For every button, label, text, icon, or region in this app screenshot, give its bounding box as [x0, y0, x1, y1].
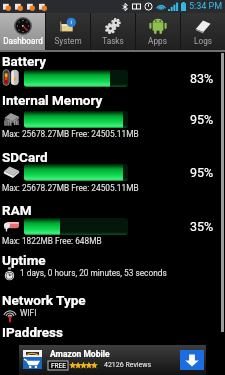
- staticText: Max: 25678.27MB Free: 24505.11MB: [2, 129, 139, 139]
- staticText: Battery: [2, 53, 47, 69]
- staticText: 1 days, 0 hours, 20 minutes, 53 seconds: [20, 268, 167, 278]
- staticText: Tasks: [102, 36, 124, 46]
- staticText: Uptime: [2, 252, 46, 268]
- staticText: 95%: [190, 112, 214, 127]
- staticText: RAM: [2, 202, 32, 218]
- staticText: Amazon Mobile: [50, 349, 110, 359]
- button[interactable]: System: [45, 13, 90, 50]
- staticText: 5:34 PM: [189, 1, 223, 12]
- staticText: IPaddress: [2, 324, 63, 340]
- button[interactable]: Logs: [180, 13, 225, 50]
- staticText: 35%: [190, 219, 214, 234]
- staticText: WIFI: [20, 308, 37, 318]
- button[interactable]: Download: [180, 350, 204, 370]
- staticText: FREE: [51, 362, 66, 369]
- staticText: Logs: [194, 36, 212, 46]
- button[interactable]: Apps: [135, 13, 180, 50]
- button[interactable]: Dashboard: [0, 13, 45, 50]
- staticText: Max: 1822MB Free: 648MB: [2, 236, 102, 246]
- staticText: Dashboard: [3, 36, 43, 46]
- staticText: System: [54, 36, 82, 46]
- staticText: Network Type: [2, 292, 86, 308]
- staticText: Internal Memory: [2, 92, 103, 108]
- staticText: 42126 Reviews: [104, 361, 152, 369]
- staticText: Max: 25678.27MB Free: 24505.11MB: [2, 183, 139, 193]
- button[interactable]: Tasks: [90, 13, 135, 50]
- staticText: 95%: [190, 165, 214, 180]
- staticText: Apps: [148, 36, 167, 46]
- staticText: 83%: [190, 71, 214, 86]
- staticText: SDCard: [2, 149, 48, 165]
- button[interactable]: Amazon Mobile: [19, 345, 206, 375]
